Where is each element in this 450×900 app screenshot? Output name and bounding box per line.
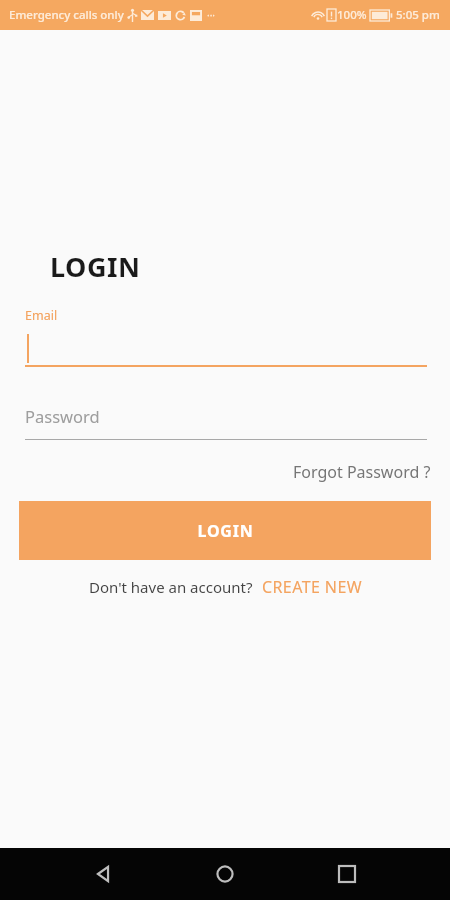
button[interactable]: CREATE NEW <box>262 573 362 601</box>
button[interactable]: Password <box>25 401 427 431</box>
staticText: Email <box>25 307 58 324</box>
button[interactable]: Back <box>80 851 126 897</box>
staticText: Forgot Password ? <box>293 461 431 483</box>
staticText: LOGIN <box>50 248 141 285</box>
staticText: Don't have an account? <box>89 577 253 597</box>
staticText: 100% <box>337 7 367 23</box>
staticText: Emergency calls only <box>9 7 124 23</box>
staticText: Password <box>25 405 100 427</box>
button[interactable]: LOGIN <box>19 501 431 560</box>
staticText: CREATE NEW <box>262 576 362 598</box>
button[interactable]: Recents <box>324 851 370 897</box>
button[interactable]: Home <box>202 851 248 897</box>
button[interactable] <box>25 333 427 364</box>
staticText: ··· <box>207 8 216 22</box>
staticText: 5:05 pm <box>396 7 440 23</box>
button[interactable]: Forgot Password ? <box>291 458 433 486</box>
staticText: LOGIN <box>197 520 254 542</box>
